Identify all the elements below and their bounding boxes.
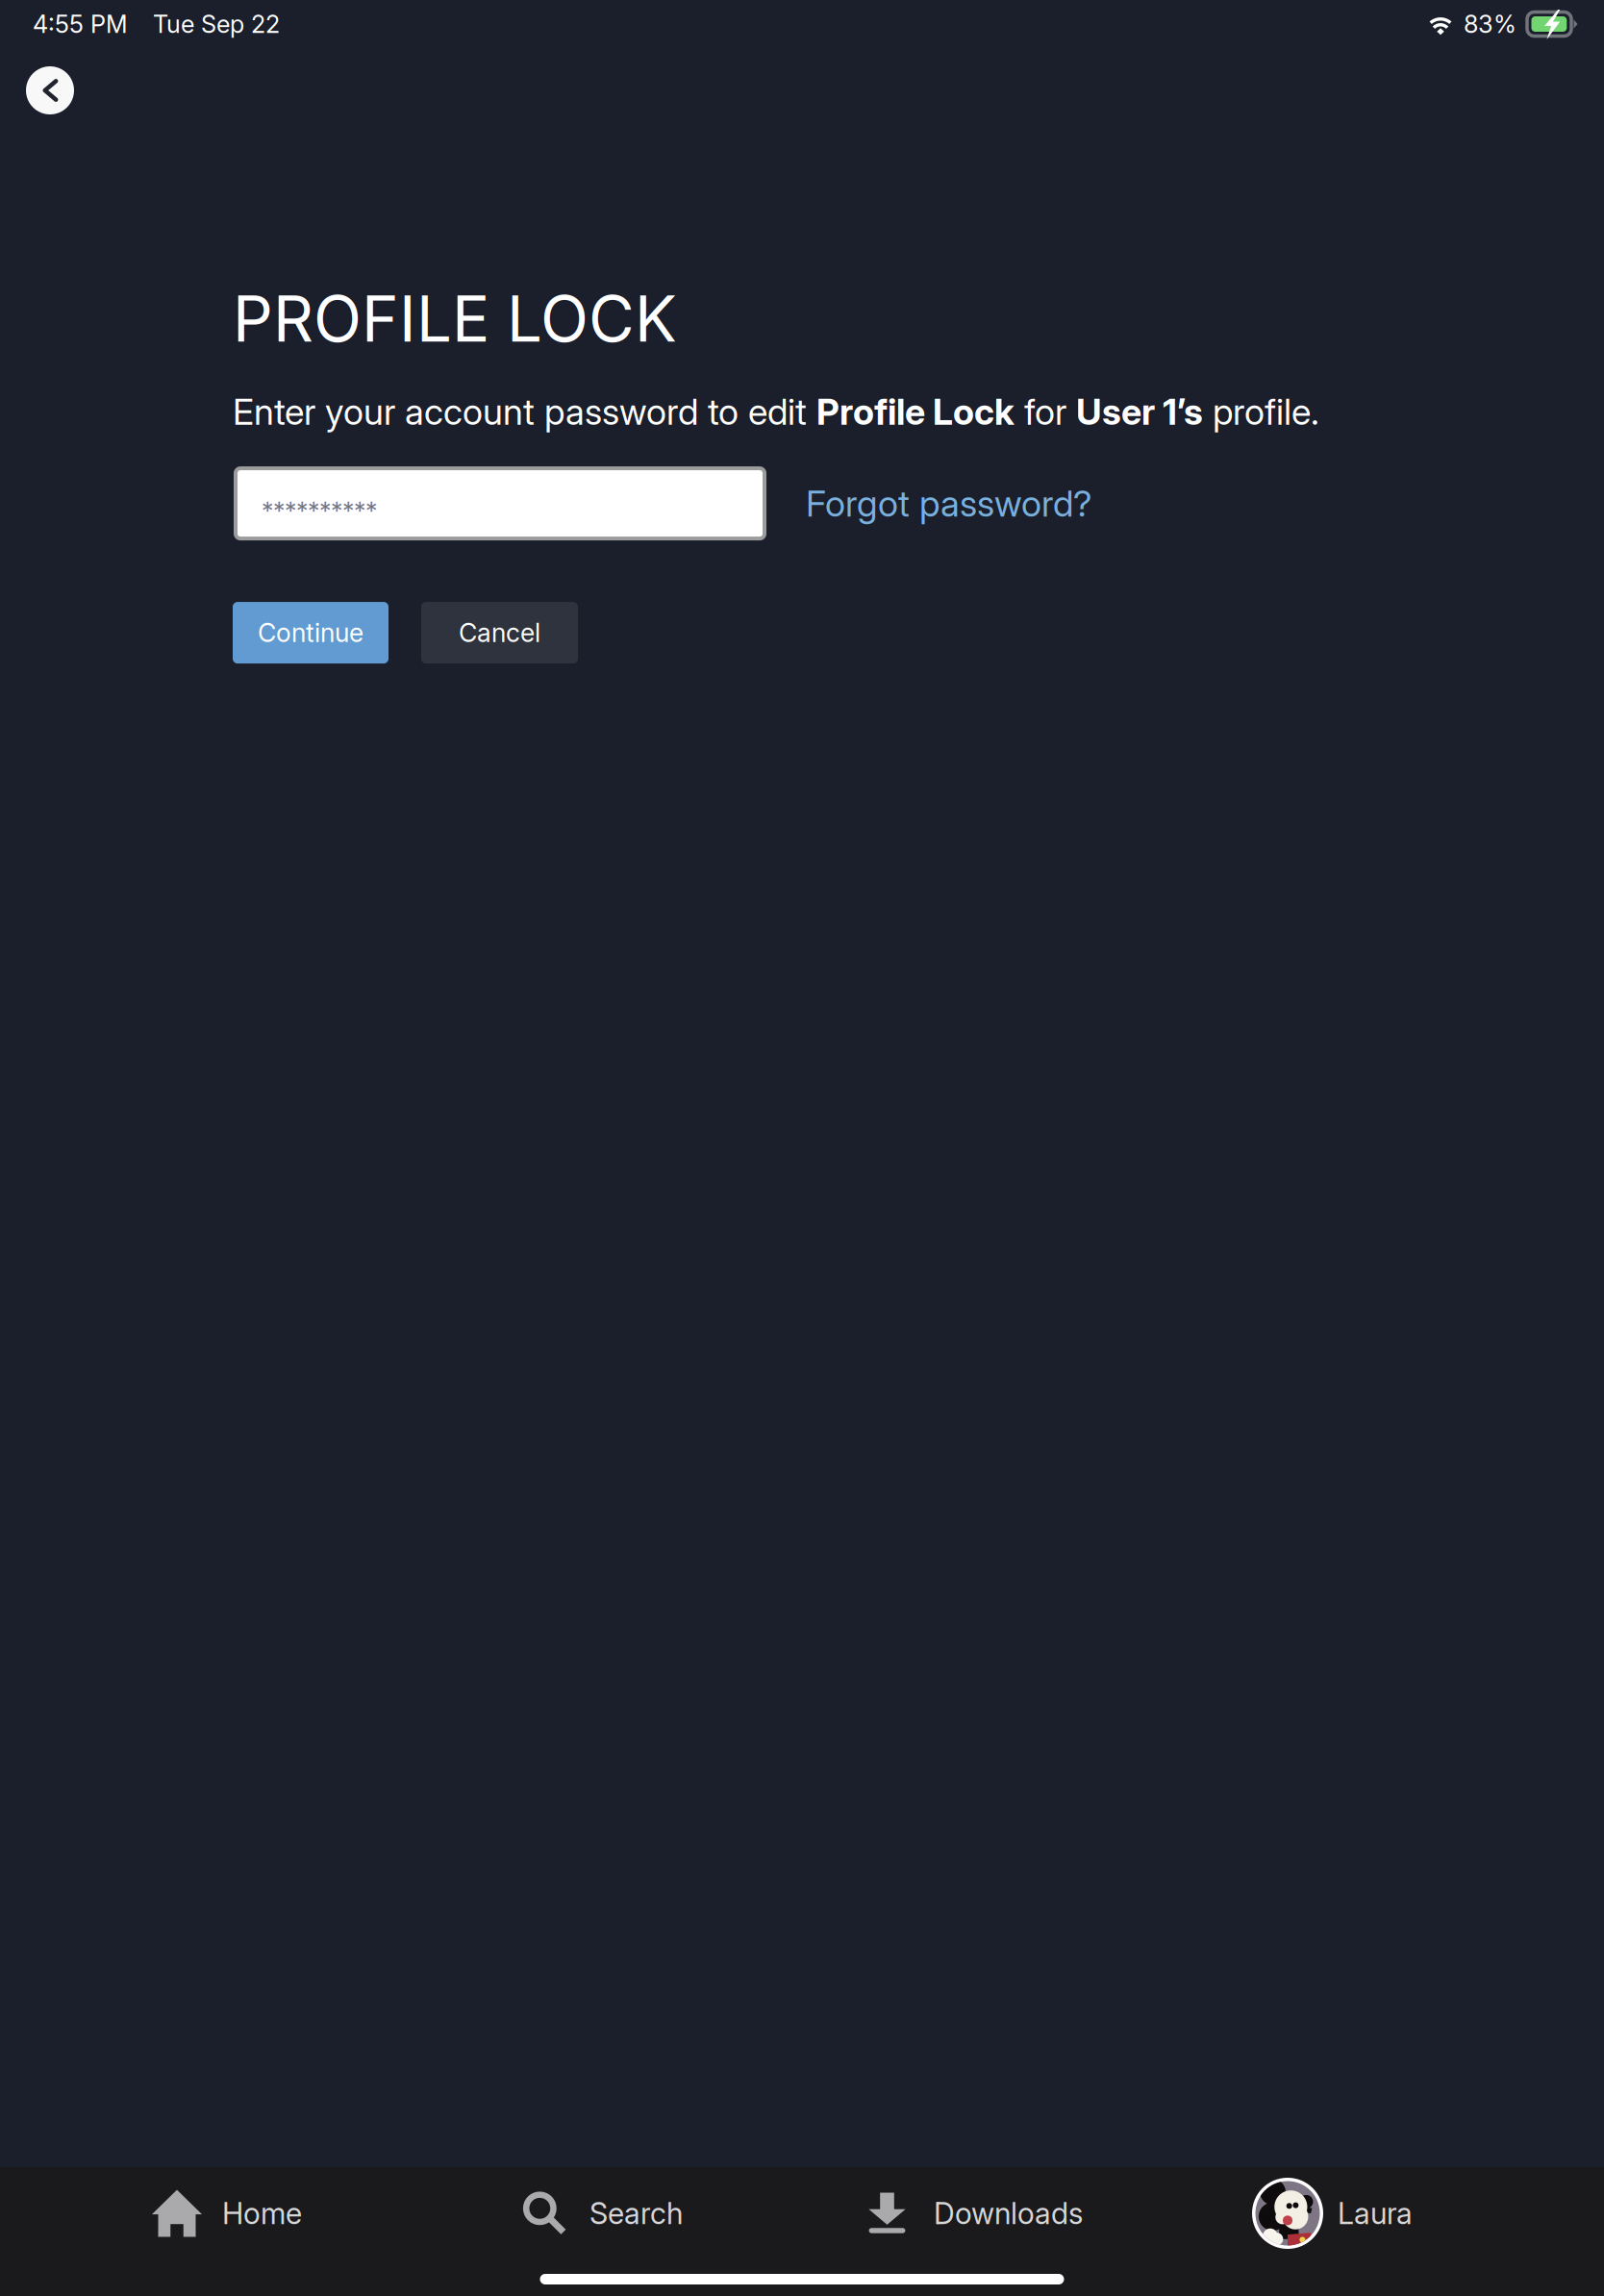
staticText: Tue Sep 22	[153, 9, 280, 39]
staticText: 83%	[1464, 9, 1516, 39]
staticText: 4:55 PM	[33, 9, 128, 39]
staticText: Downloads	[934, 2195, 1083, 2231]
staticText: Cancel	[459, 617, 540, 648]
staticText: Forgot password?	[806, 482, 1091, 525]
staticText: Enter your account password to edit Prof…	[233, 390, 1319, 433]
button[interactable]: Continue	[233, 602, 388, 664]
staticText: **********	[262, 496, 377, 526]
button[interactable]: Downloads	[866, 2167, 1083, 2259]
staticText: Home	[222, 2195, 302, 2231]
button[interactable]: Cancel	[421, 602, 578, 664]
button[interactable]: Forgot password?	[806, 482, 1091, 525]
staticText: Continue	[258, 617, 363, 648]
button[interactable]: Password	[236, 468, 764, 539]
staticText: Search	[589, 2195, 683, 2231]
staticText: Laura	[1338, 2195, 1413, 2231]
button[interactable]: Search	[523, 2167, 683, 2259]
button[interactable]: Laura	[1252, 2167, 1413, 2259]
staticText: PROFILE LOCK	[233, 281, 677, 357]
button[interactable]: Home	[152, 2167, 302, 2259]
button[interactable]: Back	[26, 66, 74, 114]
